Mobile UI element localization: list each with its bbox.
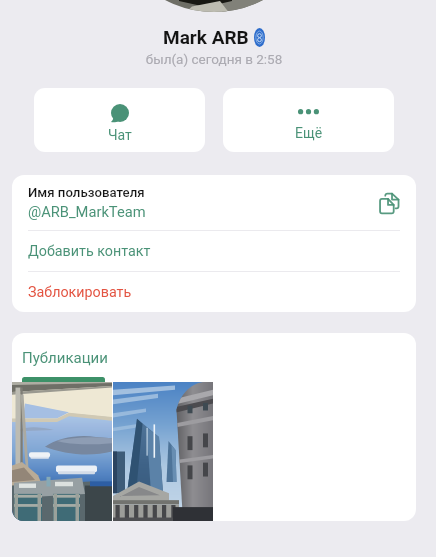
staticText: был(а) сегодня в 2:58 bbox=[0, 51, 428, 67]
staticText: Добавить контакт bbox=[28, 243, 151, 260]
staticText: Ещё bbox=[295, 125, 323, 141]
button[interactable]: Публикации bbox=[12, 333, 416, 382]
button[interactable]: Добавить контакт bbox=[12, 231, 416, 271]
button[interactable]: Заблокировать bbox=[12, 272, 416, 312]
button[interactable]: Ещё bbox=[223, 88, 394, 152]
staticText: Публикации bbox=[22, 349, 108, 367]
staticText: Mark ARB bbox=[163, 26, 249, 48]
button[interactable]: Чат bbox=[34, 88, 205, 152]
staticText: @ARB_MarkTeam bbox=[28, 203, 146, 220]
button[interactable]: Copy username bbox=[376, 190, 402, 216]
staticText: Имя пользователя bbox=[28, 185, 145, 200]
staticText: Заблокировать bbox=[28, 284, 132, 301]
button[interactable]: Имя пользователя bbox=[12, 175, 416, 230]
staticText: Чат bbox=[108, 127, 132, 143]
